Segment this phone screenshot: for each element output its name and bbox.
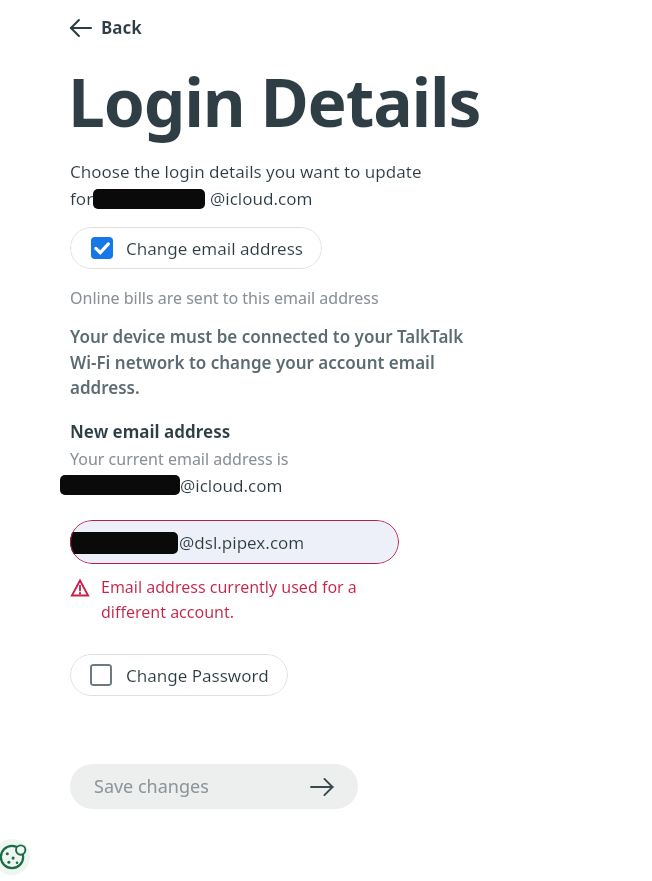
button[interactable]: Save changes bbox=[70, 764, 358, 809]
button[interactable]: Change email address bbox=[70, 227, 322, 269]
staticText: Choose the login details you want to upd… bbox=[70, 160, 422, 183]
staticText: Your device must be connected to your Ta… bbox=[70, 325, 468, 399]
button[interactable]: Back bbox=[70, 13, 152, 42]
staticText: Change Password bbox=[126, 664, 269, 687]
staticText: Login Details bbox=[68, 56, 481, 146]
staticText: @icloud.com bbox=[210, 187, 313, 210]
staticText: Your current email address is bbox=[70, 448, 289, 470]
staticText: Email address currently used for a diffe… bbox=[101, 576, 400, 622]
staticText: Save changes bbox=[94, 774, 310, 799]
staticText: Change email address bbox=[126, 237, 303, 260]
button[interactable]: Cookie settings bbox=[0, 839, 30, 875]
staticText: @icloud.com bbox=[180, 474, 283, 497]
button[interactable]: @dsl.pipex.com bbox=[70, 520, 399, 564]
staticText: for bbox=[70, 187, 98, 210]
button[interactable]: Change Password bbox=[70, 654, 288, 696]
staticText: New email address bbox=[70, 420, 231, 443]
staticText: Online bills are sent to this email addr… bbox=[70, 287, 379, 309]
staticText: Back bbox=[101, 16, 142, 39]
staticText: @dsl.pipex.com bbox=[179, 531, 305, 554]
